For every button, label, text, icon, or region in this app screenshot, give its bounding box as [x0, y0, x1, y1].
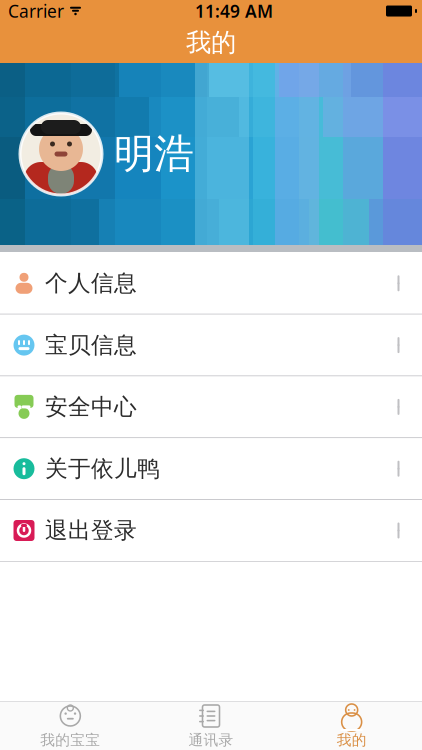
staticText: 安全中心: [45, 393, 137, 421]
button[interactable]: 关于依儿鸭: [0, 438, 422, 499]
staticText: 关于依儿鸭: [45, 455, 160, 483]
button[interactable]: 我的宝宝: [0, 698, 141, 750]
staticText: 11:49 AM: [195, 0, 273, 22]
staticText: 我的: [186, 27, 236, 58]
button[interactable]: 我的: [281, 698, 422, 750]
staticText: 退出登录: [45, 517, 137, 544]
staticText: 个人信息: [45, 269, 137, 297]
staticText: 明浩: [114, 129, 194, 178]
button[interactable]: 安全中心: [0, 376, 422, 437]
staticText: Carrier: [8, 0, 64, 22]
button[interactable]: 宝贝信息: [0, 315, 422, 376]
staticText: 我的: [337, 731, 367, 749]
staticText: 通讯录: [188, 731, 233, 749]
staticText: 我的宝宝: [40, 731, 100, 749]
button[interactable]: 通讯录: [141, 698, 281, 750]
button[interactable]: 退出登录: [0, 500, 422, 561]
staticText: 宝贝信息: [45, 331, 137, 359]
button[interactable]: 个人信息: [0, 253, 422, 314]
